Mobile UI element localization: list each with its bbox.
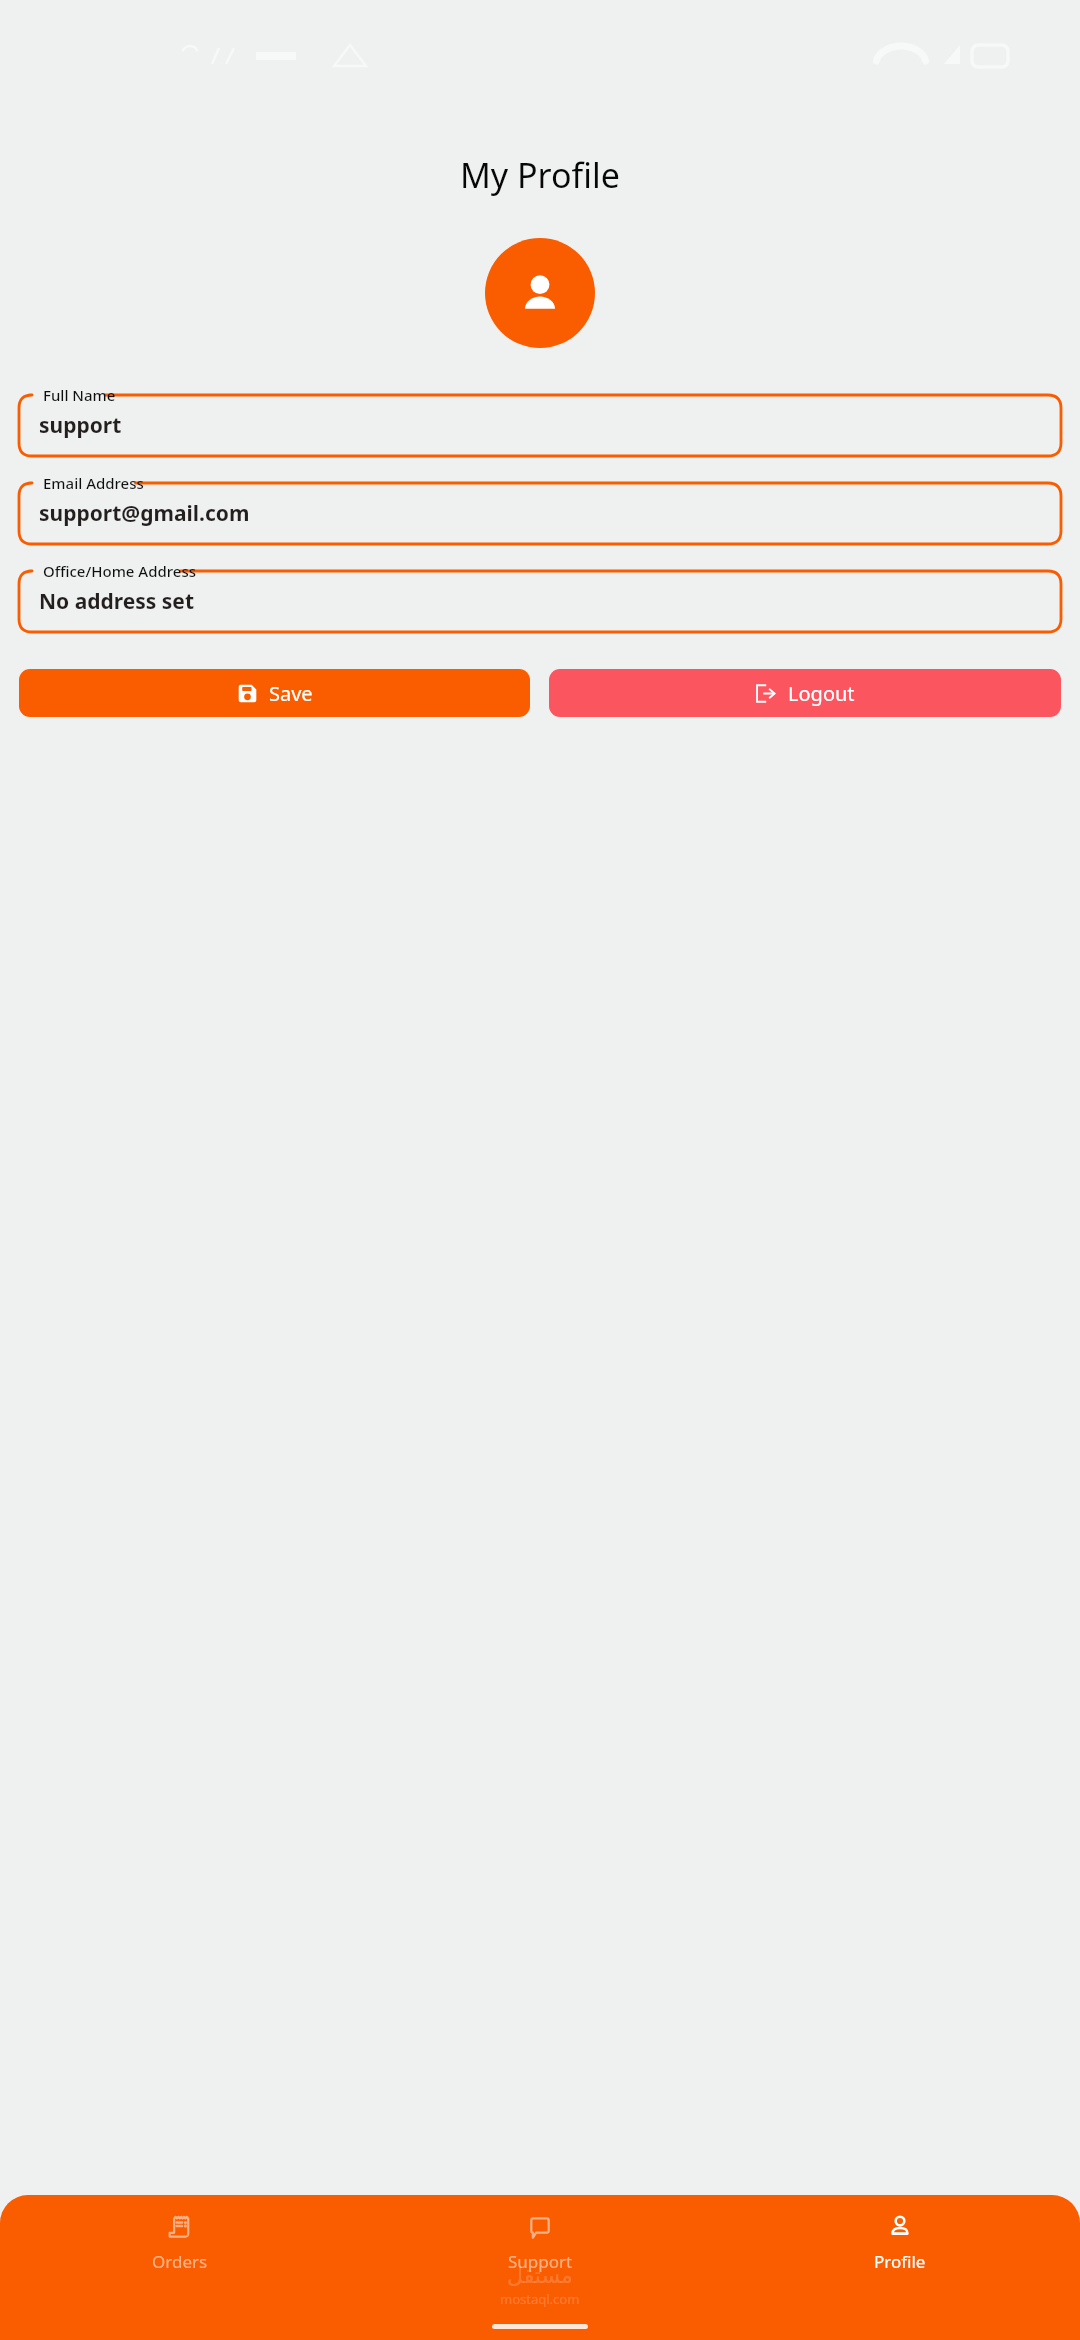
staticText: Orders — [152, 2250, 208, 2273]
button[interactable]: Support — [360, 2209, 720, 2276]
staticText: Full Name — [43, 385, 116, 405]
staticText: Email Address — [43, 473, 144, 493]
staticText: My Profile — [0, 152, 1080, 198]
staticText: Support — [508, 2250, 573, 2273]
staticText: Office/Home Address — [43, 561, 197, 581]
button[interactable]: Orders — [0, 2209, 360, 2276]
button[interactable]: Save — [19, 669, 530, 717]
button[interactable]: Full Name — [19, 390, 1061, 456]
staticText: Logout — [788, 680, 855, 707]
staticText: Profile — [874, 2250, 926, 2273]
button[interactable]: Email Address — [19, 478, 1061, 544]
button[interactable]: Office/Home Address — [19, 566, 1061, 632]
button[interactable]: Profile — [720, 2209, 1080, 2276]
button[interactable]: Logout — [549, 669, 1061, 717]
staticText: مستقل — [507, 2263, 573, 2289]
staticText: support@gmail.com — [39, 499, 250, 528]
staticText: mostaql.com — [500, 2290, 580, 2308]
staticText: support — [39, 411, 122, 440]
staticText: No address set — [39, 587, 195, 616]
button[interactable]: Change profile photo — [485, 238, 595, 348]
staticText: Save — [269, 680, 313, 707]
